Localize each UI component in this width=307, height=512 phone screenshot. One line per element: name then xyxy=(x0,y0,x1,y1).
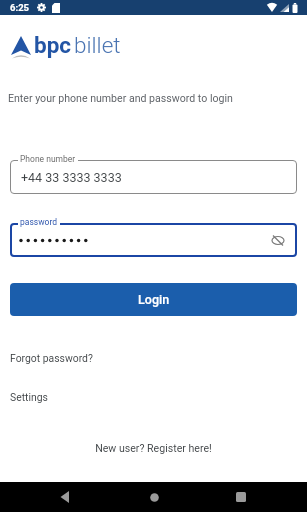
button[interactable]: Login xyxy=(10,283,297,316)
staticText: +44 33 3333 3333 xyxy=(21,170,122,185)
staticText: New user? Register here! xyxy=(95,442,212,454)
button[interactable] xyxy=(10,223,297,257)
staticText: 6:25 xyxy=(10,2,30,13)
staticText: Login xyxy=(138,292,170,307)
button[interactable]: Settings xyxy=(10,391,48,403)
staticText: Enter your phone number and password to … xyxy=(8,92,233,104)
button[interactable] xyxy=(0,482,103,512)
button[interactable] xyxy=(205,482,307,512)
staticText: Phone number xyxy=(20,154,76,164)
staticText: bpc xyxy=(34,32,72,58)
button[interactable]: New user? Register here! xyxy=(0,442,307,454)
button[interactable]: +44 33 3333 3333 xyxy=(10,160,297,194)
button[interactable] xyxy=(103,482,205,512)
staticText: Forgot password? xyxy=(10,352,93,364)
staticText: billet xyxy=(74,32,121,58)
staticText: Settings xyxy=(10,391,48,403)
staticText: password xyxy=(20,217,58,227)
button[interactable]: Forgot password? xyxy=(10,352,93,364)
